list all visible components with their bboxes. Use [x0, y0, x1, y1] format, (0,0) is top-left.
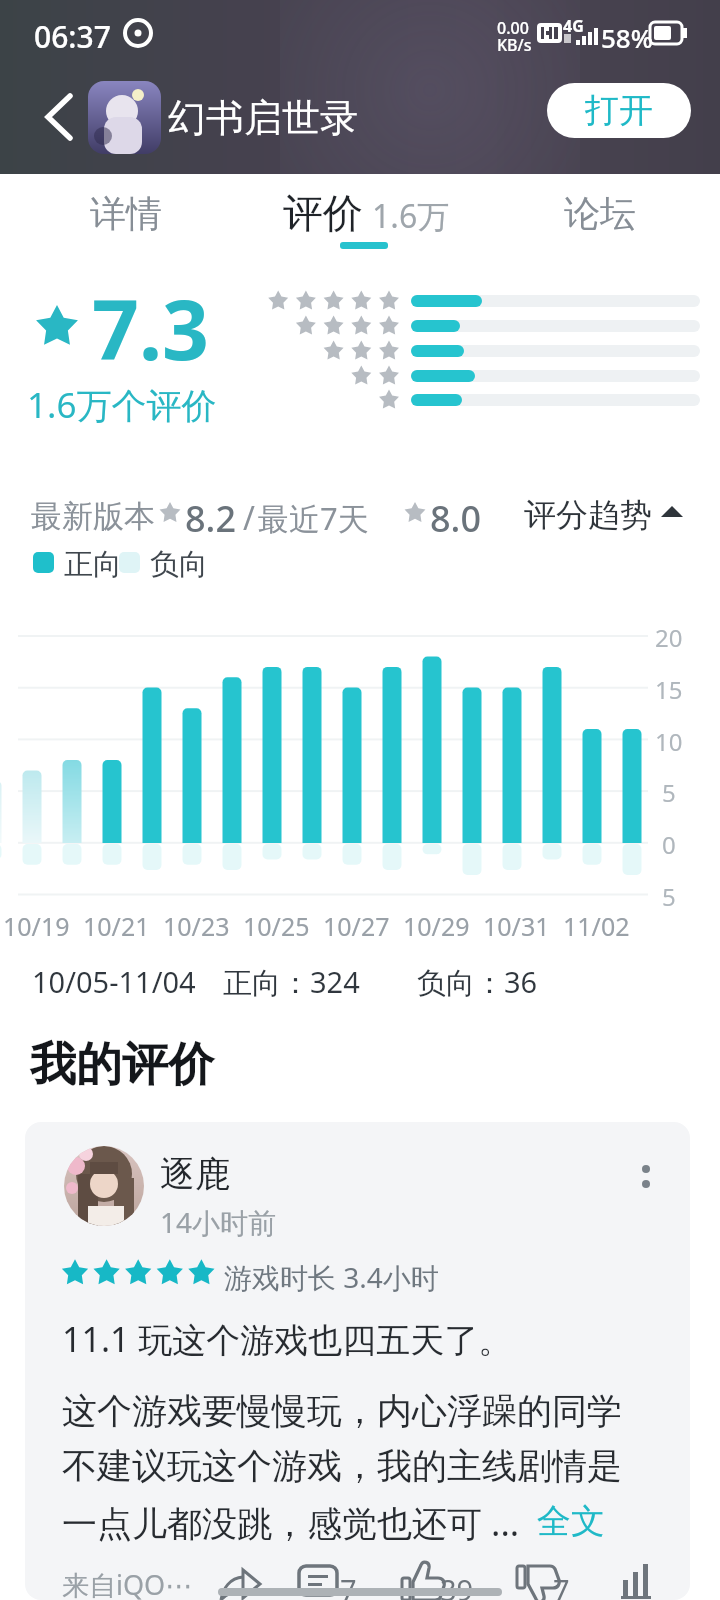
staticText: 8.0 — [430, 494, 481, 543]
staticText: 7 — [340, 1570, 357, 1600]
button[interactable]: 全文 — [537, 1500, 605, 1543]
staticText: 11/02 — [563, 909, 630, 943]
button[interactable]: 打开 — [547, 83, 691, 138]
staticText: 10/19 — [3, 909, 70, 943]
staticText: 10/05-11/04 — [32, 962, 196, 1001]
staticText: 10 — [655, 725, 683, 758]
staticText: 4G — [563, 15, 584, 37]
staticText: 06:37 — [34, 16, 111, 57]
staticText: 不建议玩这个游戏，我的主线剧情是 — [62, 1444, 622, 1488]
staticText: 全文 — [537, 1500, 605, 1543]
staticText: 最近7天 — [258, 497, 369, 539]
staticText: 正向 — [64, 546, 122, 583]
staticText: 7 — [553, 1570, 570, 1600]
staticText: 负向：36 — [417, 962, 538, 1002]
button[interactable] — [34, 86, 90, 148]
button[interactable] — [520, 488, 690, 538]
staticText: 15 — [655, 673, 683, 706]
staticText: 一点儿都没跳，感觉也还可 ... — [62, 1499, 520, 1547]
button[interactable]: 论坛 — [524, 174, 676, 252]
staticText: 负向 — [150, 546, 208, 583]
staticText: KB/s — [497, 34, 532, 56]
staticText: 正向：324 — [223, 962, 360, 1002]
staticText: 评价 — [283, 188, 363, 238]
staticText: 39 — [440, 1570, 474, 1600]
button[interactable]: 详情 — [50, 174, 202, 252]
staticText: 逐鹿 — [160, 1152, 230, 1196]
staticText: 20 — [655, 621, 683, 654]
staticText: 我的评价 — [30, 1036, 214, 1094]
staticText: 10/27 — [323, 909, 390, 943]
staticText: / — [243, 496, 255, 540]
staticText: 11.1 玩这个游戏也四五天了。 — [62, 1316, 513, 1362]
staticText: 10/25 — [243, 909, 310, 943]
staticText: 1.6万个评价 — [27, 381, 217, 429]
staticText: 来自iQO⋯ — [62, 1566, 193, 1600]
staticText: 8.2 — [185, 494, 236, 543]
staticText: 论坛 — [564, 191, 636, 236]
staticText: 7.3 — [92, 272, 209, 384]
staticText: 5 — [662, 880, 676, 913]
staticText: 10/21 — [83, 909, 150, 943]
staticText: 详情 — [90, 191, 162, 236]
staticText: 0.00 — [497, 17, 529, 39]
staticText: 这个游戏要慢慢玩，内心浮躁的同学 — [62, 1389, 622, 1433]
staticText: 14小时前 — [160, 1203, 277, 1241]
staticText: 幻书启世录 — [168, 94, 358, 142]
staticText: 10/29 — [403, 909, 470, 943]
button[interactable] — [250, 174, 470, 252]
staticText: 10/31 — [483, 909, 550, 943]
button[interactable] — [620, 1145, 672, 1205]
staticText: 10/23 — [163, 909, 230, 943]
staticText: 游戏时长 3.4小时 — [224, 1258, 439, 1296]
staticText: 打开 — [585, 89, 653, 132]
staticText: 58% — [601, 20, 653, 55]
staticText: 评分趋势 — [524, 495, 652, 535]
staticText: 5 — [662, 776, 676, 809]
staticText: 0 — [662, 828, 676, 861]
staticText: 1.6万 — [372, 194, 450, 238]
staticText: 最新版本 — [31, 497, 155, 536]
